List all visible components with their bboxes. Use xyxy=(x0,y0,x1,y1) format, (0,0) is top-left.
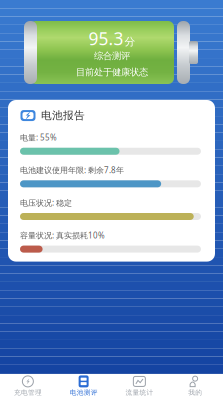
staticText: 95.3 xyxy=(88,27,123,50)
staticText: 容量状况: 真实损耗10% xyxy=(20,230,105,241)
button[interactable]: 电池测评 xyxy=(56,373,112,398)
button[interactable]: 我的 xyxy=(167,373,223,398)
staticText: 电池测评 xyxy=(70,388,98,397)
staticText: 分 xyxy=(124,35,135,48)
staticText: 综合测评 xyxy=(94,50,130,61)
staticText: 目前处于健康状态 xyxy=(76,66,148,78)
button[interactable]: 充电管理 xyxy=(0,373,56,398)
staticText: 充电管理 xyxy=(14,388,42,397)
button[interactable]: 流量统计 xyxy=(111,373,167,398)
staticText: 电池建议使用年限: 剩余7.8年 xyxy=(20,165,124,175)
staticText: 流量统计 xyxy=(125,388,153,397)
staticText: 电压状况: 稳定 xyxy=(20,197,72,208)
staticText: 电量: 55% xyxy=(20,132,57,143)
staticText: 电池报告 xyxy=(41,109,85,122)
staticText: 我的 xyxy=(188,388,202,397)
